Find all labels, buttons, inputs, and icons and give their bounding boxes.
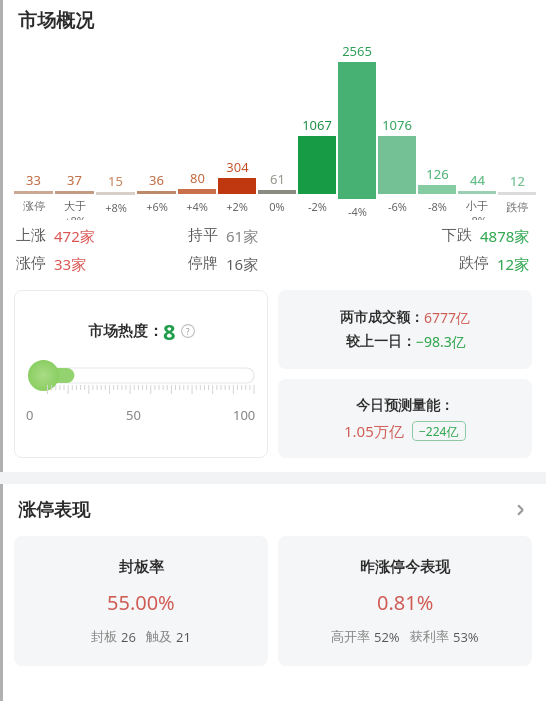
button[interactable]: 市场热度： (14, 290, 268, 458)
staticText: 获利率 (410, 628, 449, 644)
staticText: 36 (149, 171, 164, 189)
staticText: -6% (388, 199, 407, 214)
staticText: 126 (426, 165, 449, 183)
staticText: 55.00% (107, 589, 175, 616)
staticText: −224亿 (419, 423, 459, 439)
staticText: +8% (64, 213, 86, 220)
staticText: 52% (374, 628, 400, 646)
staticText: 33 (26, 171, 41, 189)
staticText: 4878家 (480, 226, 530, 246)
staticText: 今日预测量能： (356, 397, 454, 415)
staticText: 高开率 (331, 628, 370, 644)
staticText: 跌停 (459, 254, 489, 273)
staticText: 100 (233, 406, 256, 424)
staticText: 封板 (91, 628, 117, 644)
staticText: -4% (348, 204, 367, 219)
staticText: 12家 (497, 254, 530, 274)
button[interactable]: Info (181, 324, 195, 338)
staticText: 1.05万亿 (344, 421, 404, 441)
staticText: 6777亿 (424, 308, 471, 327)
staticText: 8 (163, 316, 176, 346)
staticText: ? (186, 326, 190, 337)
staticText: 16家 (226, 254, 259, 274)
staticText: -8% (468, 213, 487, 220)
staticText: 0% (269, 199, 285, 214)
staticText: 市场热度： (88, 322, 163, 341)
staticText: -8% (428, 199, 447, 214)
staticText: 下跌 (442, 226, 472, 245)
button[interactable]: 涨停表现 (0, 484, 546, 536)
button[interactable]: 封板率 (14, 536, 268, 666)
staticText: 472家 (54, 226, 95, 246)
staticText: +2% (226, 199, 248, 214)
staticText: 涨停表现 (18, 499, 90, 522)
staticText: 15 (108, 172, 123, 190)
staticText: 304 (226, 158, 249, 176)
staticText: 37 (67, 171, 82, 189)
staticText: 较上一日： (346, 333, 416, 351)
staticText: 33家 (54, 254, 87, 274)
staticText: 大于 (64, 199, 86, 213)
staticText: 触及 (146, 628, 172, 644)
staticText: 53% (453, 628, 479, 646)
staticText: 61 (270, 170, 285, 188)
staticText: 涨停 (16, 254, 46, 273)
staticText: 50 (126, 406, 141, 424)
staticText: 12 (510, 172, 525, 190)
staticText: 61家 (226, 226, 259, 246)
staticText: 1067 (302, 116, 332, 134)
staticText: 持平 (188, 226, 218, 245)
staticText: −98.3亿 (416, 332, 466, 351)
staticText: 1076 (382, 116, 412, 134)
staticText: 小于 (466, 199, 488, 213)
staticText: +4% (186, 199, 208, 214)
staticText: 跌停 (506, 200, 528, 214)
staticText: 0 (26, 406, 34, 424)
staticText: 44 (470, 171, 485, 189)
button[interactable]: 今日预测量能： (278, 379, 532, 458)
staticText: 市场概况 (18, 9, 94, 33)
staticText: -2% (308, 199, 327, 214)
staticText: +6% (146, 199, 168, 214)
staticText: 21 (176, 628, 191, 646)
staticText: 上涨 (16, 226, 46, 245)
staticText: 26 (121, 628, 136, 646)
button[interactable]: 两市成交额： (278, 290, 532, 369)
staticText: 停牌 (188, 254, 218, 273)
staticText: 2565 (342, 42, 372, 60)
other: More (512, 502, 528, 518)
staticText: 封板率 (119, 558, 164, 577)
staticText: 昨涨停今表现 (360, 558, 450, 577)
staticText: 两市成交额： (340, 309, 424, 327)
button[interactable]: 昨涨停今表现 (278, 536, 532, 666)
staticText: 0.81% (377, 589, 434, 616)
staticText: 80 (190, 169, 205, 187)
staticText: +8% (105, 200, 127, 215)
staticText: 涨停 (23, 199, 45, 213)
